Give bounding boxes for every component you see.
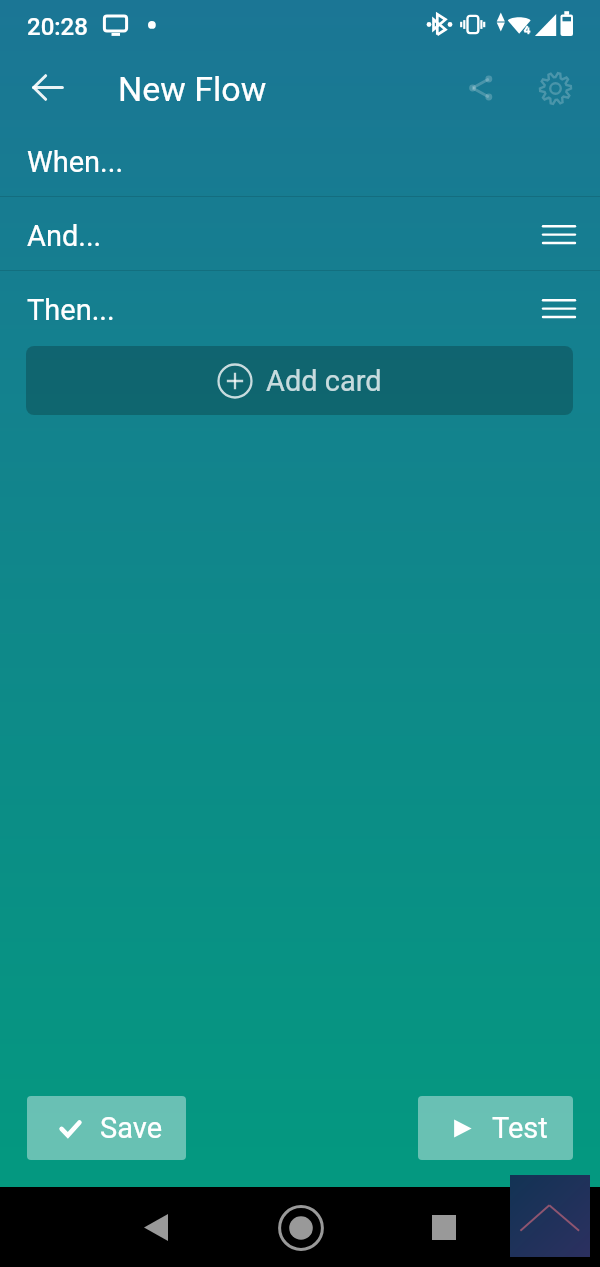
staticText: Save [100,1111,163,1145]
button[interactable]: Recents [411,1195,476,1260]
button[interactable]: Back [123,1195,188,1260]
staticText: When... [27,145,124,179]
button[interactable]: Add card [26,346,573,415]
button[interactable]: Test [418,1096,573,1160]
button[interactable]: Share [453,60,509,116]
other: Reorder [533,208,585,260]
button[interactable]: Save [27,1096,186,1160]
staticText: Test [492,1111,548,1145]
staticText: New Flow [118,69,267,109]
button[interactable]: Then... [0,271,600,344]
button[interactable]: Settings [527,60,583,116]
button[interactable]: And... [0,197,600,270]
staticText: Then... [27,293,115,327]
button[interactable]: Home [268,1195,333,1260]
other: Reorder [533,282,585,334]
staticText: And... [27,219,102,253]
staticText: Add card [266,364,382,398]
button[interactable]: When... [0,123,600,196]
staticText: 20:28 [27,13,88,41]
button[interactable]: Back [14,54,81,121]
